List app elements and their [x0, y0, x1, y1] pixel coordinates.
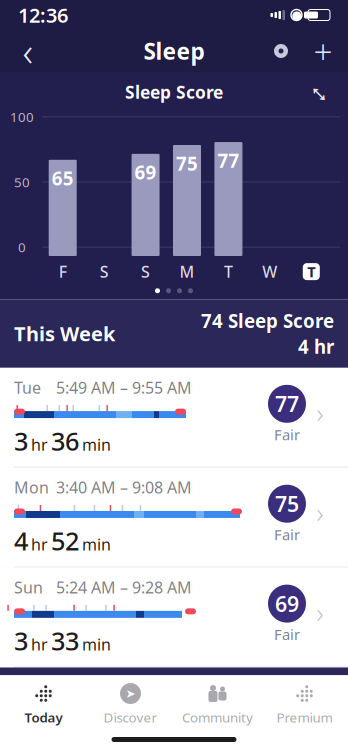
button[interactable]: Sun	[0, 568, 348, 667]
staticText: 5:24 AM – 9:28 AM	[56, 577, 192, 598]
staticText: 3	[14, 624, 28, 657]
staticText: 5 hr 48 min	[230, 702, 334, 727]
button[interactable]: Add	[306, 31, 340, 71]
staticText: ●	[291, 8, 301, 22]
staticText: hr	[31, 534, 48, 555]
staticText: 12:36	[18, 2, 68, 28]
staticText: ›	[316, 395, 323, 430]
staticText: 69	[275, 589, 299, 618]
staticText: This Week	[14, 320, 115, 347]
staticText: 50	[14, 173, 30, 191]
staticText: Discover	[103, 708, 157, 726]
staticText: 74 Sleep Score	[201, 308, 334, 333]
staticText: min	[82, 434, 111, 455]
staticText: +	[313, 29, 332, 73]
staticText: hr	[31, 634, 48, 655]
staticText: 77	[275, 390, 299, 418]
staticText: Sleep Score	[125, 80, 223, 103]
staticText: ➤	[125, 687, 135, 700]
staticText: 52	[51, 524, 79, 558]
staticText: Community	[182, 708, 253, 726]
staticText: 75	[176, 151, 198, 176]
staticText: 73 Sleep Score	[201, 676, 334, 701]
staticText: Fair	[274, 525, 300, 544]
staticText: T	[307, 262, 315, 281]
staticText: Mon	[14, 477, 49, 498]
button[interactable]: Expand chart	[304, 80, 334, 104]
button[interactable]: Premium	[261, 675, 348, 726]
staticText: 4 hr	[298, 334, 334, 359]
button[interactable]: Sat	[0, 736, 348, 750]
staticText: 77	[217, 148, 239, 173]
staticText: ‹	[22, 24, 33, 77]
staticText: W	[262, 261, 277, 282]
staticText: 36	[51, 424, 79, 458]
staticText: 4	[14, 524, 28, 558]
staticText: 100	[10, 108, 34, 126]
staticText: 0	[18, 238, 26, 256]
staticText: S	[141, 261, 150, 282]
staticText: M	[179, 261, 194, 282]
staticText: Tue	[14, 377, 41, 398]
staticText: Today	[24, 708, 62, 726]
button[interactable]: Today	[0, 675, 87, 726]
staticText: min	[82, 634, 111, 655]
button[interactable]: Back	[8, 31, 48, 71]
staticText: 5:49 AM – 9:55 AM	[56, 377, 192, 398]
staticText: ›	[316, 595, 323, 630]
staticText: 65	[52, 166, 74, 191]
button[interactable]: ➤	[87, 675, 174, 726]
staticText: Premium	[276, 708, 332, 726]
button[interactable]: Community	[174, 675, 261, 726]
staticText: hr	[31, 434, 48, 455]
staticText: 75	[275, 490, 299, 518]
staticText: Sleep	[143, 36, 204, 66]
staticText: F	[59, 261, 67, 282]
staticText: S	[100, 261, 109, 282]
staticText: 69	[135, 160, 157, 185]
staticText: Fair	[274, 625, 300, 644]
button[interactable]: Settings	[264, 31, 298, 71]
staticText: Last Week	[14, 688, 116, 715]
staticText: Sun	[14, 577, 43, 598]
staticText: 33	[51, 624, 79, 657]
staticText: ›	[316, 495, 323, 530]
button[interactable]: Tue	[0, 368, 348, 468]
staticText: min	[82, 534, 111, 555]
staticText: T	[224, 261, 233, 282]
staticText: 3:40 AM – 9:08 AM	[56, 477, 192, 498]
staticText: Fair	[274, 425, 300, 444]
staticText: 3	[14, 424, 28, 458]
button[interactable]: Mon	[0, 468, 348, 568]
staticText: ⤡	[310, 69, 327, 115]
